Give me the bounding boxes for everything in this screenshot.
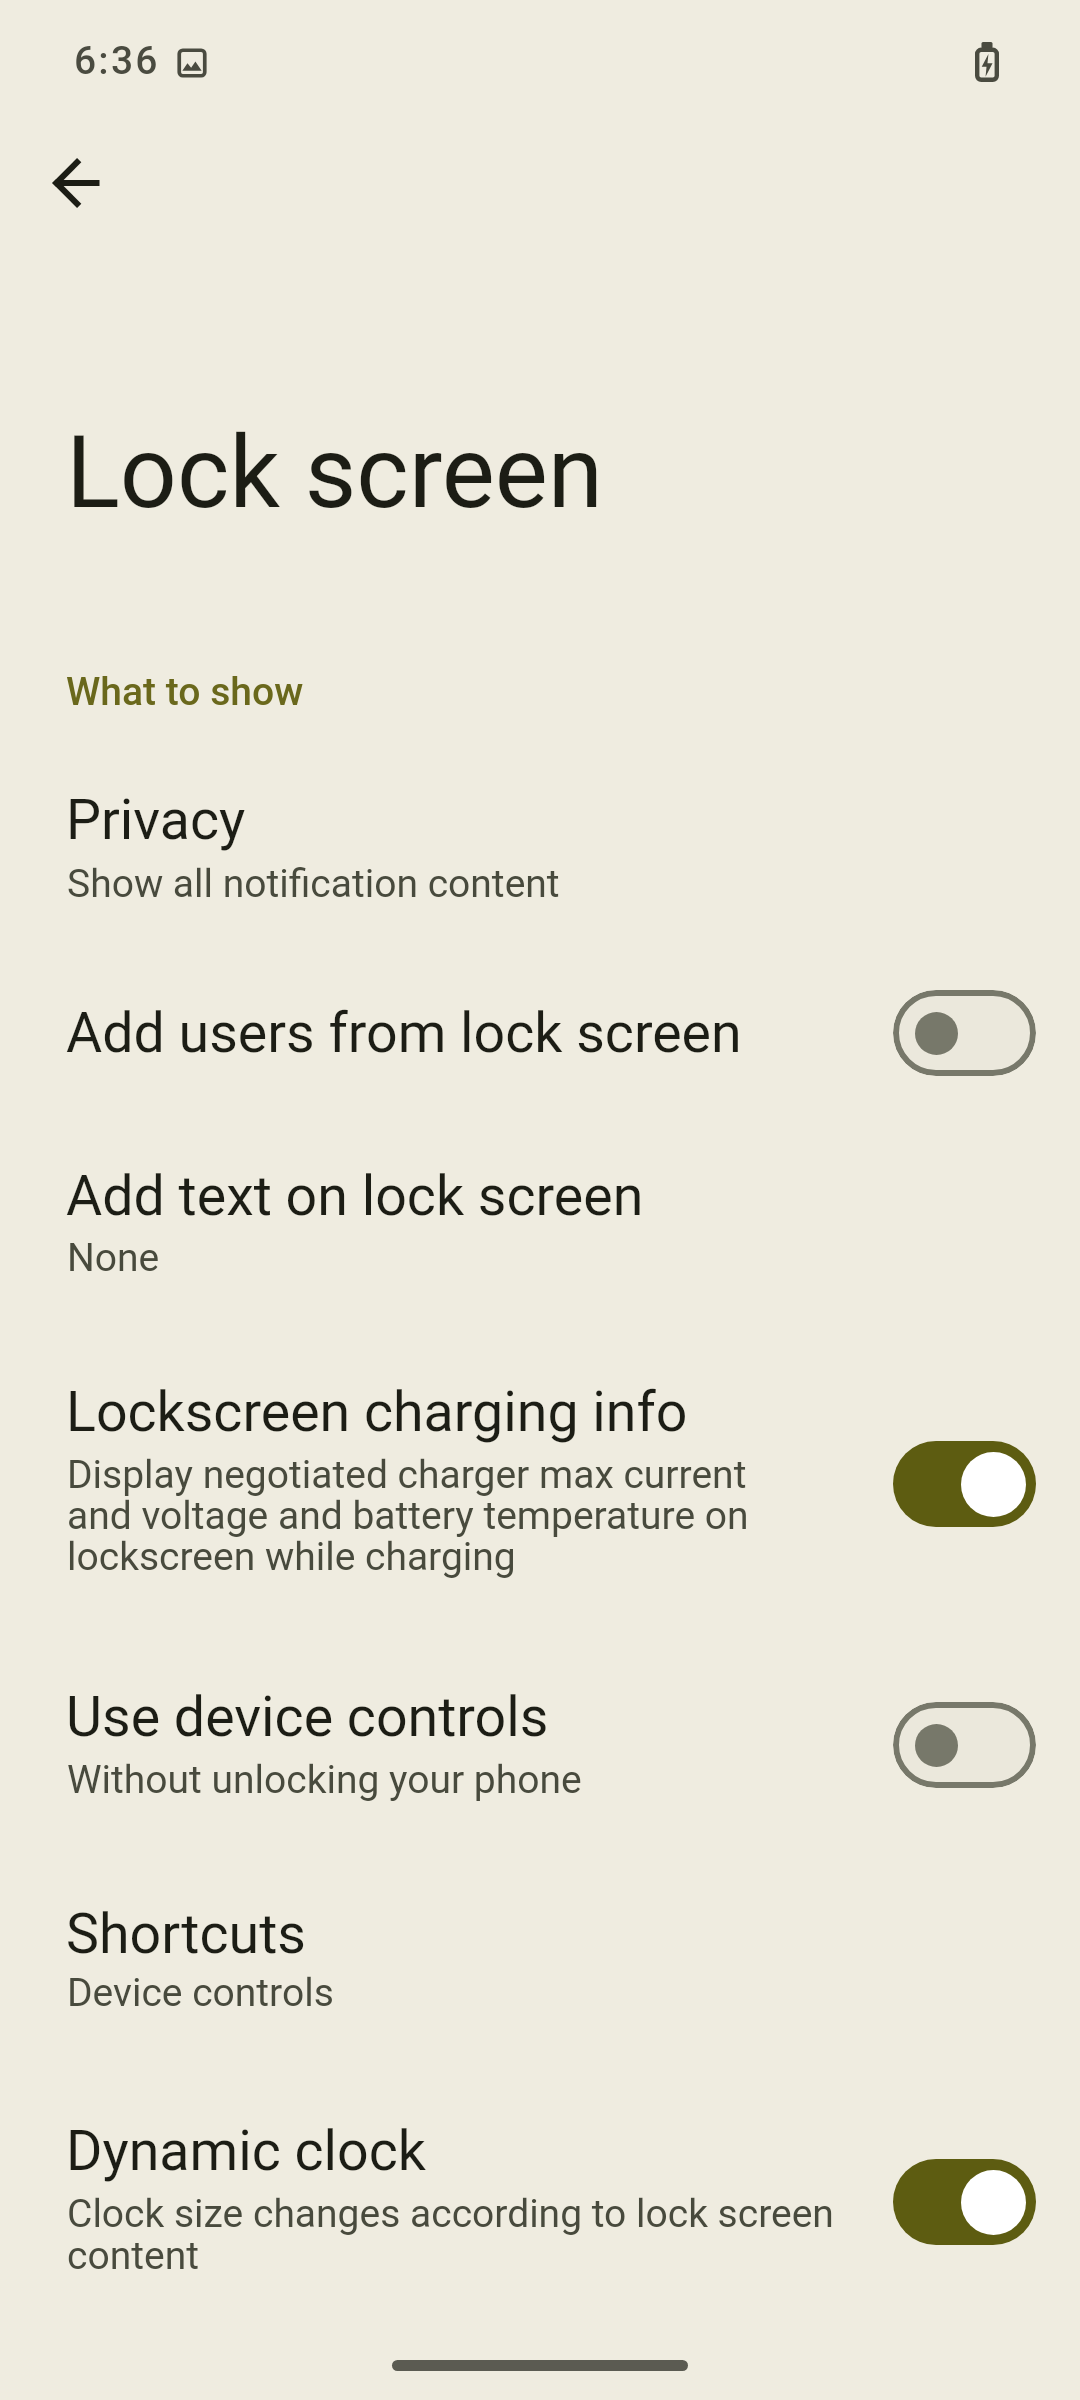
- button[interactable]: [893, 990, 1036, 1076]
- staticText: Add text on lock screen: [66, 1164, 644, 1229]
- staticText: Shortcuts: [66, 1902, 306, 1967]
- button[interactable]: Use device controls: [0, 1655, 1080, 1830]
- button[interactable]: Lockscreen charging info: [0, 1355, 1080, 1610]
- staticText: Add users from lock screen: [66, 1001, 742, 1066]
- button[interactable]: Privacy: [0, 770, 1080, 935]
- staticText: and voltage and battery temperature on: [67, 1493, 749, 1539]
- staticText: Lock screen: [66, 414, 603, 531]
- button[interactable]: Shortcuts: [0, 1875, 1080, 2040]
- staticText: Lockscreen charging info: [66, 1380, 688, 1445]
- button[interactable]: Add users from lock screen: [0, 960, 1080, 1106]
- button[interactable]: [893, 1702, 1036, 1788]
- button[interactable]: Dynamic clock: [0, 2085, 1080, 2300]
- staticText: Device controls: [67, 1970, 334, 2016]
- staticText: Use device controls: [66, 1685, 549, 1750]
- button[interactable]: [893, 2159, 1036, 2245]
- staticText: Privacy: [66, 788, 246, 853]
- staticText: None: [67, 1235, 160, 1281]
- staticText: Dynamic clock: [66, 2119, 426, 2184]
- button[interactable]: Add text on lock screen: [0, 1135, 1080, 1320]
- staticText: lockscreen while charging: [67, 1534, 516, 1580]
- staticText: Display negotiated charger max current: [67, 1452, 747, 1498]
- button[interactable]: [29, 135, 125, 231]
- button[interactable]: [893, 1441, 1036, 1527]
- staticText: Without unlocking your phone: [67, 1757, 582, 1803]
- staticText: Show all notification content: [67, 861, 560, 907]
- staticText: Clock size changes according to lock scr…: [67, 2191, 834, 2237]
- staticText: 6:36: [74, 38, 160, 84]
- staticText: What to show: [66, 669, 304, 715]
- staticText: content: [67, 2233, 199, 2279]
